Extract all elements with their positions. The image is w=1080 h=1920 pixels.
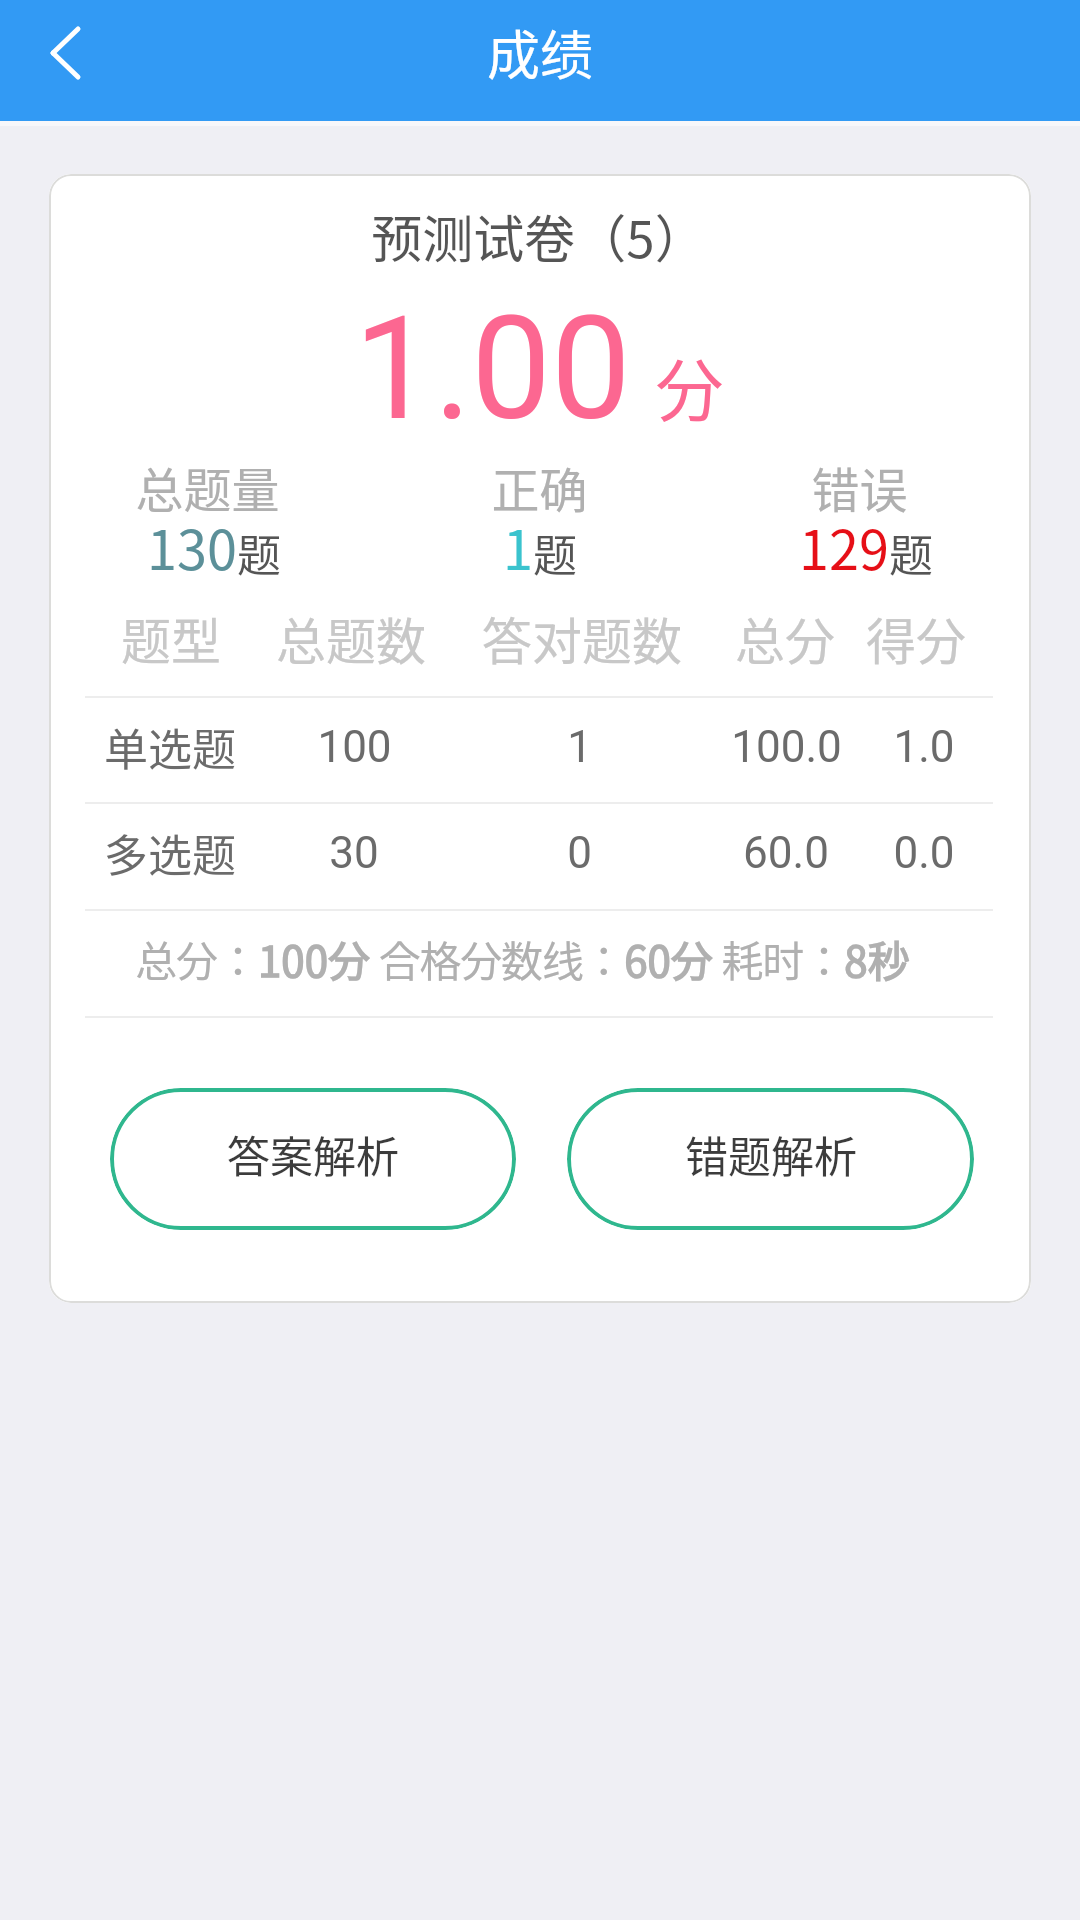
staticText: 题型	[121, 602, 221, 674]
staticText: 60分	[624, 928, 713, 989]
staticText: 1	[503, 507, 533, 585]
staticText: 总分：	[135, 928, 258, 989]
staticText: 100	[317, 721, 392, 773]
staticText: 130	[147, 507, 237, 585]
staticText: 1	[567, 721, 592, 773]
button[interactable]: Back	[10, 8, 110, 108]
staticText: 错误	[811, 452, 908, 522]
staticText: 题	[533, 521, 577, 585]
staticText: 单选题	[104, 715, 236, 779]
staticText: 分	[655, 337, 724, 435]
staticText: 得分	[866, 602, 966, 674]
button[interactable]: 答案解析	[110, 1088, 516, 1230]
staticText: 0	[567, 827, 592, 879]
staticText: 耗时：	[713, 928, 844, 989]
staticText: 答对题数	[482, 602, 682, 674]
staticText: 30	[329, 827, 379, 879]
staticText: 总题数	[276, 602, 426, 674]
staticText: 题	[237, 521, 281, 585]
staticText: 60.0	[743, 827, 829, 879]
staticText: 129	[799, 507, 889, 585]
staticText: 成绩	[487, 14, 593, 91]
staticText: 正确	[491, 452, 588, 522]
staticText: 合格分数线：	[370, 928, 624, 989]
button[interactable]: 错题解析	[567, 1088, 974, 1230]
staticText: 100.0	[731, 721, 842, 773]
staticText: 1.00	[354, 286, 631, 452]
staticText: 答案解析	[227, 1123, 399, 1185]
staticText: 错题解析	[685, 1123, 857, 1185]
staticText: 100分	[258, 928, 370, 989]
staticText: 1.0	[893, 721, 955, 773]
staticText: 总分	[735, 602, 835, 674]
staticText: 总题量	[135, 452, 280, 522]
staticText: 题	[889, 521, 933, 585]
staticText: 0.0	[893, 827, 955, 879]
staticText: 预测试卷（5）	[371, 199, 706, 273]
staticText: 8秒	[844, 928, 910, 989]
staticText: 多选题	[104, 821, 236, 885]
